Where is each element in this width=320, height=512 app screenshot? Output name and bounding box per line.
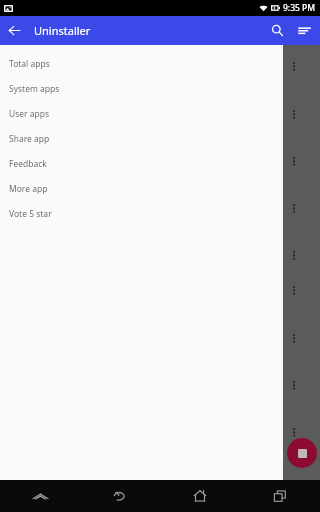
staticText: Share app (9, 133, 50, 145)
button[interactable]: Expand (0, 480, 80, 512)
staticText: Feedback (9, 158, 47, 170)
button[interactable]: Search (264, 17, 291, 44)
button[interactable]: System apps (0, 76, 283, 101)
button[interactable]: Back (80, 480, 160, 512)
staticText: Uninstaller (34, 23, 91, 38)
staticText: More app (9, 183, 48, 195)
button[interactable]: Uninstall (287, 438, 317, 468)
staticText: 9:35 PM (283, 2, 316, 14)
button[interactable]: Recents (240, 480, 320, 512)
staticText: Total apps (9, 58, 50, 70)
button[interactable]: Vote 5 star (0, 201, 283, 226)
button[interactable]: Total apps (0, 51, 283, 76)
staticText: Vote 5 star (9, 208, 52, 220)
button[interactable]: More app (0, 176, 283, 201)
button[interactable]: Sort (291, 17, 318, 44)
button[interactable]: Share app (0, 126, 283, 151)
button[interactable]: Feedback (0, 151, 283, 176)
staticText: User apps (9, 108, 50, 120)
button[interactable]: User apps (0, 101, 283, 126)
button[interactable]: Home (160, 480, 240, 512)
staticText: System apps (9, 83, 60, 95)
button[interactable]: Back (0, 16, 29, 45)
